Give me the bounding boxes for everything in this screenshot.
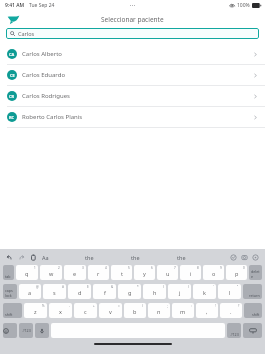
staticText: q [25, 270, 29, 277]
button[interactable]: % [24, 303, 47, 318]
other: Dismiss keyboard [243, 323, 262, 338]
staticText: .?123 [22, 328, 31, 333]
staticText: ) [188, 285, 189, 289]
button[interactable]: the [131, 254, 140, 261]
staticText: " [237, 285, 239, 289]
button[interactable]: ? [220, 303, 242, 318]
button[interactable]: 4 [88, 265, 109, 280]
button[interactable]: CR [0, 86, 265, 107]
staticText: shift [252, 312, 260, 317]
button[interactable]: = [99, 303, 122, 318]
button[interactable]: .?123 [19, 323, 33, 338]
staticText: r [97, 270, 100, 277]
staticText: z [34, 308, 37, 315]
staticText: 9:41 AM [5, 2, 25, 9]
staticText: Carlos Rodrigues [22, 92, 70, 100]
button[interactable]: shift [3, 303, 22, 318]
button[interactable]: shift [244, 303, 262, 318]
button[interactable]: : [172, 303, 194, 318]
button[interactable]: ! [196, 303, 218, 318]
button[interactable]: CA [0, 44, 265, 65]
staticText: h [153, 289, 157, 296]
button[interactable]: Emoji [3, 323, 17, 338]
staticText: @ [36, 285, 39, 289]
staticText: ; [167, 304, 168, 308]
button[interactable]: Redo [18, 254, 25, 261]
button[interactable]: ' [193, 284, 216, 299]
staticText: v [109, 308, 112, 315]
button[interactable]: 0 [226, 265, 247, 280]
button[interactable]: + [74, 303, 97, 318]
button[interactable]: Undo [6, 254, 13, 261]
button[interactable]: 2 [40, 265, 62, 280]
staticText: c [84, 308, 87, 315]
staticText: u [166, 270, 170, 277]
button[interactable]: ) [168, 284, 191, 299]
button[interactable]: & [93, 284, 116, 299]
staticText: / [142, 304, 144, 308]
staticText: 6 [151, 266, 153, 270]
staticText: l [229, 289, 231, 296]
button[interactable]: RC [0, 107, 265, 128]
staticText: e [73, 270, 77, 277]
staticText: CA [9, 52, 15, 57]
button[interactable]: * [118, 284, 141, 299]
button[interactable]: 8 [180, 265, 201, 280]
button[interactable]: Carlos [6, 28, 259, 39]
button[interactable]: ( [143, 284, 166, 299]
staticText: CE [10, 73, 15, 78]
staticText: ' [213, 285, 214, 289]
staticText: 8 [197, 266, 199, 270]
button[interactable]: the [85, 254, 94, 261]
button[interactable]: # [43, 284, 66, 299]
button[interactable]: - [49, 303, 72, 318]
button[interactable]: Check [230, 254, 237, 261]
button[interactable]: .?123 [227, 323, 241, 338]
staticText: g [128, 289, 132, 296]
button[interactable]: tab [3, 265, 14, 280]
button[interactable]: 5 [111, 265, 132, 280]
staticText: & [111, 285, 114, 289]
button[interactable]: / [124, 303, 146, 318]
staticText: 1 [34, 266, 36, 270]
button[interactable]: 3 [64, 265, 86, 280]
button[interactable]: Camera [241, 254, 248, 261]
staticText: delete [251, 269, 260, 279]
button[interactable]: Aa [41, 253, 50, 262]
button[interactable]: 7 [157, 265, 178, 280]
staticText: * [137, 285, 139, 289]
button[interactable]: 6 [134, 265, 155, 280]
staticText: i [190, 270, 192, 277]
button[interactable]: 9 [203, 265, 224, 280]
staticText: Carlos [18, 30, 35, 37]
button[interactable]: Logo [7, 13, 20, 26]
staticText: s [53, 289, 56, 296]
staticText: . [230, 308, 232, 315]
button[interactable]: the [177, 254, 186, 261]
staticText: p [235, 270, 239, 277]
staticText: % [42, 304, 45, 308]
staticText: x [59, 308, 62, 315]
button[interactable]: " [218, 284, 241, 299]
button[interactable]: CE [0, 65, 265, 86]
staticText: n [157, 308, 161, 315]
staticText: ! [215, 304, 216, 308]
button[interactable]: caps lock [3, 284, 17, 299]
staticText: return [249, 293, 260, 298]
staticText: : [191, 304, 192, 308]
staticText: 9 [220, 266, 222, 270]
button[interactable]: 1 [16, 265, 38, 280]
button[interactable]: Dictation [35, 323, 49, 338]
staticText: b [133, 308, 137, 315]
button[interactable]: $ [68, 284, 91, 299]
button[interactable]: @ [19, 284, 41, 299]
staticText: 100% [237, 2, 250, 9]
button[interactable]: Hide keyboard [252, 254, 259, 261]
staticText: ( [163, 285, 164, 289]
button[interactable]: return [243, 284, 262, 299]
staticText: Roberto Carlos Planis [22, 113, 83, 121]
button[interactable]: ; [148, 303, 170, 318]
button[interactable]: Paste [30, 254, 37, 261]
button[interactable]: delete [249, 265, 262, 280]
